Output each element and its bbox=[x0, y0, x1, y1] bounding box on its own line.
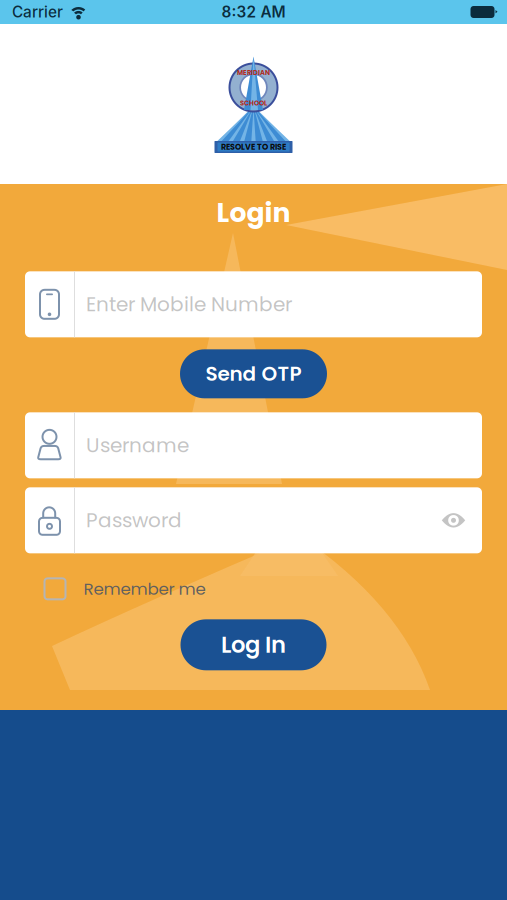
staticText: Enter Mobile Number bbox=[86, 290, 292, 318]
staticText: Username bbox=[86, 431, 189, 459]
staticText: Carrier bbox=[12, 3, 63, 21]
staticText: Remember me bbox=[83, 577, 205, 600]
staticText: RESOLVE TO RISE bbox=[221, 141, 286, 153]
button[interactable]: Remember me bbox=[0, 572, 507, 605]
button[interactable]: Enter Mobile Number bbox=[25, 271, 482, 337]
button[interactable]: Password bbox=[25, 487, 482, 553]
staticText: Password bbox=[86, 506, 182, 534]
staticText: 8:32 AM bbox=[221, 3, 285, 21]
staticText: SCHOOL bbox=[240, 98, 267, 108]
staticText: Login bbox=[216, 194, 290, 231]
staticText: Send OTP bbox=[205, 360, 301, 388]
staticText: MERIDIAN bbox=[237, 68, 270, 77]
button[interactable]: Log In bbox=[180, 619, 326, 670]
staticText: Log In bbox=[221, 629, 286, 661]
button[interactable]: Username bbox=[25, 412, 482, 478]
button[interactable]: Send OTP bbox=[180, 349, 327, 398]
